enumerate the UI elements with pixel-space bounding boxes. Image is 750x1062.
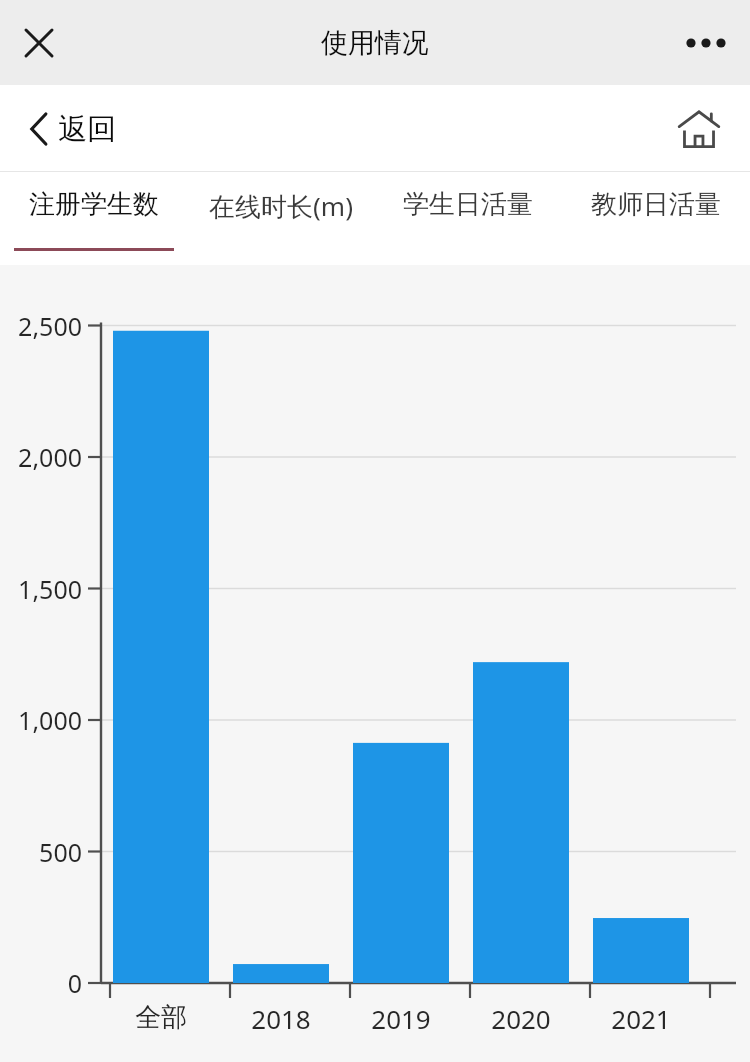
button[interactable]: Home xyxy=(666,96,732,162)
staticText: 学生日活量 xyxy=(403,188,533,221)
staticText: 1,000 xyxy=(0,703,82,737)
staticText: 0 xyxy=(0,966,82,1000)
staticText: 全部 xyxy=(101,1001,221,1034)
button[interactable]: 注册学生数 xyxy=(0,172,187,265)
staticText: 注册学生数 xyxy=(29,188,159,221)
staticText: 在线时长(m) xyxy=(209,188,353,224)
button[interactable]: More options xyxy=(676,19,736,67)
staticText: 使用情况 xyxy=(321,26,429,60)
staticText: 2018 xyxy=(221,1001,341,1036)
button[interactable]: 教师日活量 xyxy=(562,172,750,265)
button[interactable]: 学生日活量 xyxy=(374,172,562,265)
staticText: 返回 xyxy=(58,111,116,148)
staticText: 2,500 xyxy=(0,309,82,343)
staticText: 2021 xyxy=(581,1001,701,1036)
staticText: 2019 xyxy=(341,1001,461,1036)
button[interactable]: 返回 xyxy=(22,93,124,165)
button[interactable]: Close xyxy=(12,16,66,70)
staticText: 500 xyxy=(0,835,82,869)
button[interactable]: 在线时长(m) xyxy=(187,172,374,265)
staticText: 2,000 xyxy=(0,440,82,474)
staticText: 1,500 xyxy=(0,572,82,606)
staticText: 2020 xyxy=(461,1001,581,1036)
staticText: 教师日活量 xyxy=(591,188,721,221)
